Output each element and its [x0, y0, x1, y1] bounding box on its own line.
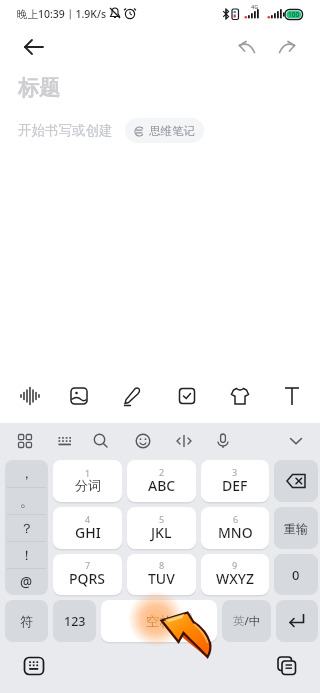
staticText: 。 [20, 493, 34, 510]
staticText: ？ [20, 520, 34, 537]
button[interactable]: 符 [5, 600, 48, 642]
staticText: ！ [20, 547, 34, 564]
staticText: 7 [85, 559, 91, 571]
button[interactable] [17, 649, 51, 683]
button[interactable] [168, 425, 200, 457]
button[interactable]: 5 [127, 507, 196, 549]
button[interactable] [274, 378, 310, 414]
button[interactable]: 8 [127, 554, 196, 595]
button[interactable] [169, 378, 205, 414]
button[interactable] [233, 33, 261, 61]
staticText: 8 [159, 559, 165, 571]
staticText: 4 [85, 513, 91, 525]
staticText: 0 [292, 566, 300, 584]
button[interactable] [12, 378, 48, 414]
button[interactable] [61, 378, 97, 414]
button[interactable]: 1 [53, 460, 122, 502]
staticText: 4G [251, 3, 259, 10]
staticText: 符 [20, 613, 33, 629]
button[interactable] [49, 425, 81, 457]
button[interactable]: 4 [53, 507, 122, 549]
staticText: 123 [64, 613, 86, 630]
button[interactable]: 7 [53, 554, 122, 595]
staticText: ， [20, 465, 34, 482]
button[interactable]: 0 [274, 554, 318, 595]
staticText: GHI [75, 523, 101, 542]
button[interactable] [222, 378, 258, 414]
button[interactable] [272, 33, 300, 61]
staticText: TUV [148, 569, 175, 588]
staticText: JKL [151, 523, 172, 542]
button[interactable]: 空格 [101, 600, 217, 642]
staticText: 重输 [284, 521, 308, 536]
button[interactable] [276, 600, 318, 642]
staticText: 100 [288, 10, 300, 19]
button[interactable] [274, 460, 318, 502]
button[interactable]: 123 [53, 600, 96, 642]
staticText: 9 [232, 559, 238, 571]
button[interactable]: 重输 [274, 507, 318, 549]
button[interactable] [280, 425, 312, 457]
button[interactable] [270, 649, 304, 683]
staticText: 3 [232, 466, 238, 478]
staticText: 1 [85, 467, 91, 479]
button[interactable] [9, 425, 41, 457]
staticText: 思维笔记 [149, 124, 195, 138]
button[interactable] [127, 425, 159, 457]
staticText: 6 [233, 513, 239, 525]
staticText: DEF [222, 476, 248, 495]
button[interactable] [114, 378, 150, 414]
staticText: 空格 [146, 613, 173, 630]
button[interactable] [207, 425, 239, 457]
staticText: WXYZ [216, 569, 254, 588]
button[interactable] [14, 27, 54, 67]
staticText: PQRS [69, 569, 106, 588]
button[interactable]: 6 [201, 507, 269, 549]
staticText: MNO [218, 523, 253, 542]
staticText: 分词 [75, 477, 101, 493]
button[interactable]: 3 [201, 460, 269, 502]
staticText: @ [20, 573, 33, 591]
button[interactable]: 2 [127, 460, 196, 502]
button[interactable]: 9 [201, 554, 269, 595]
staticText: 5 [159, 513, 165, 525]
staticText: 开始书写或创建 [18, 122, 113, 139]
button[interactable]: 英/中 [222, 600, 271, 642]
button[interactable]: ， [5, 460, 48, 595]
button[interactable]: 思维笔记 [125, 118, 204, 143]
staticText: 晚上10:39丨1.9K/s [17, 7, 107, 21]
button[interactable] [85, 425, 117, 457]
staticText: 英/中 [233, 613, 261, 629]
staticText: 标题 [18, 75, 60, 101]
staticText: 2 [159, 466, 165, 478]
staticText: ABC [148, 476, 176, 495]
